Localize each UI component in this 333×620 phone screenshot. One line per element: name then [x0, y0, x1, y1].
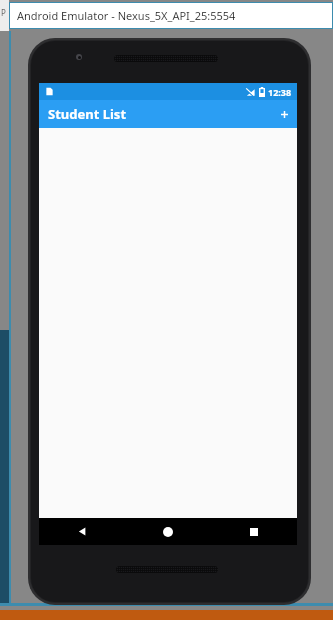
staticText: Android Emulator - Nexus_5X_API_25:5554	[17, 8, 236, 23]
button[interactable]: Add student	[273, 103, 295, 125]
staticText: P	[1, 7, 6, 18]
button[interactable]: Student List	[39, 100, 297, 128]
button[interactable]: Back	[39, 518, 125, 545]
button[interactable]: Recent apps	[211, 518, 297, 545]
staticText: Student List	[48, 105, 127, 123]
button[interactable]: Home	[125, 518, 211, 545]
staticText: 12:38	[268, 86, 292, 98]
